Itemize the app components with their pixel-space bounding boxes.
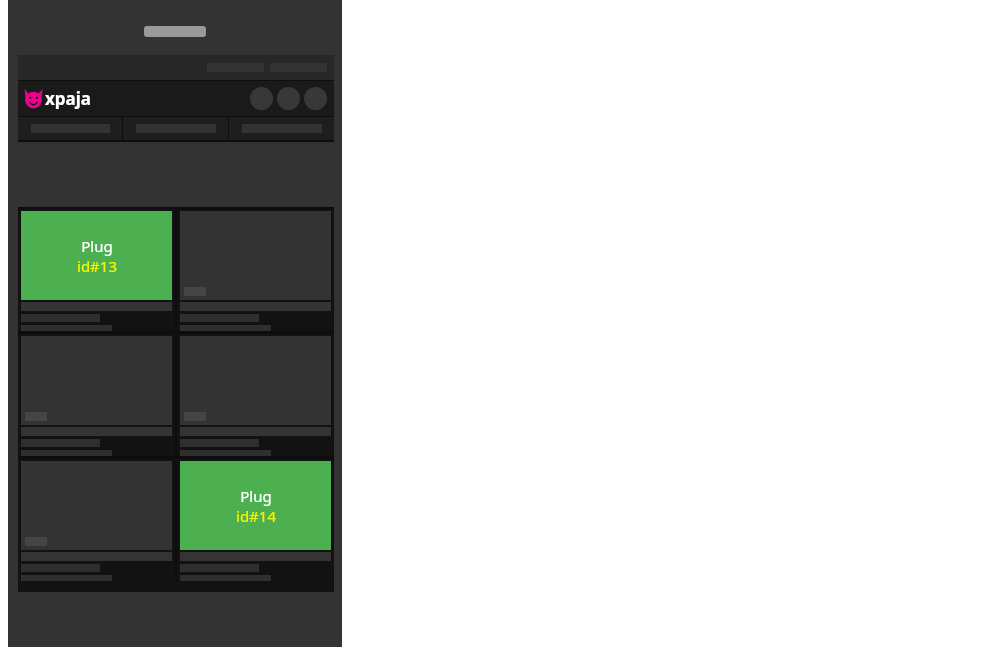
button[interactable] bbox=[18, 459, 175, 581]
button[interactable]: Action bbox=[304, 87, 327, 110]
button[interactable] bbox=[177, 209, 334, 331]
button[interactable]: Plug bbox=[177, 459, 334, 581]
staticText: id#14 bbox=[236, 506, 276, 526]
button[interactable] bbox=[177, 334, 334, 456]
staticText: xpaja bbox=[45, 87, 92, 110]
button[interactable]: xpaja home bbox=[23, 87, 92, 110]
staticText: Plug bbox=[240, 486, 272, 506]
button[interactable]: Tab 1 bbox=[18, 117, 122, 140]
button[interactable]: Action bbox=[277, 87, 300, 110]
staticText: Plug bbox=[81, 236, 113, 256]
button[interactable]: Tab 3 bbox=[229, 117, 334, 140]
staticText: id#13 bbox=[77, 256, 117, 276]
button[interactable] bbox=[18, 334, 175, 456]
button[interactable]: Plug bbox=[18, 209, 175, 331]
button[interactable]: Tab 2 bbox=[123, 117, 228, 140]
button[interactable]: Action bbox=[250, 87, 273, 110]
